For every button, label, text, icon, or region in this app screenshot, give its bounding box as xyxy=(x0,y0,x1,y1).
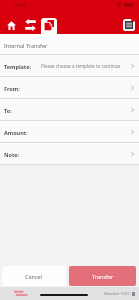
staticText: Template: xyxy=(4,63,32,70)
staticText: From: xyxy=(4,85,20,92)
staticText: Cancel xyxy=(25,273,43,280)
staticText: Transfer xyxy=(92,273,114,280)
button[interactable]: Transfer xyxy=(69,266,136,286)
staticText: Internal Transfer xyxy=(4,42,48,49)
staticText: Amount: xyxy=(4,129,28,136)
button[interactable]: Template: xyxy=(0,54,139,76)
button[interactable]: Transfers xyxy=(21,17,39,34)
button[interactable]: Accounts xyxy=(41,18,57,34)
button[interactable]: To: xyxy=(0,98,139,120)
button[interactable]: Messages xyxy=(123,19,135,31)
button[interactable]: Cancel xyxy=(2,266,66,286)
button[interactable]: Amount: xyxy=(0,120,139,142)
button[interactable]: Home xyxy=(2,17,20,34)
button[interactable]: From: xyxy=(0,76,139,98)
staticText: To: xyxy=(4,107,12,114)
staticText: Note: xyxy=(4,151,20,158)
button[interactable]: Note: xyxy=(0,142,139,164)
staticText: Please choose a template to continue xyxy=(41,63,120,69)
staticText: 3:04 xyxy=(14,1,26,9)
staticText: Member FDIC xyxy=(104,291,130,296)
